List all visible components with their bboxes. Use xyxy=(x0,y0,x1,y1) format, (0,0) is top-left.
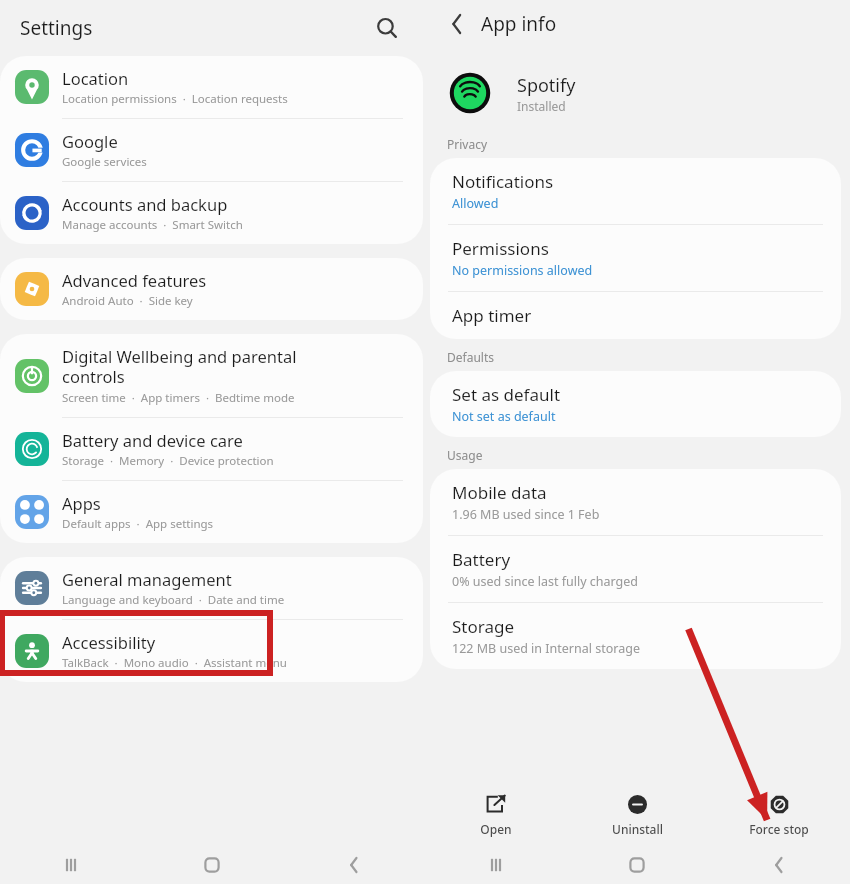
staticText: Battery and device care xyxy=(62,429,243,451)
button[interactable]: General management xyxy=(0,557,423,619)
staticText: Accessibility xyxy=(62,631,156,653)
button[interactable]: Uninstall xyxy=(566,784,708,846)
button[interactable]: Google xyxy=(0,119,423,181)
button[interactable]: Search xyxy=(367,8,407,48)
staticText: Spotify xyxy=(517,73,576,98)
button[interactable]: Back xyxy=(708,846,850,884)
staticText: App timer xyxy=(452,304,532,327)
staticText: Settings xyxy=(20,15,93,41)
staticText: 1.96 MB used since 1 Feb xyxy=(452,506,600,523)
button[interactable]: Open xyxy=(425,784,566,846)
staticText: Open xyxy=(480,821,512,837)
staticText: Advanced features xyxy=(62,269,207,291)
staticText: No permissions allowed xyxy=(452,262,593,279)
staticText: Google services xyxy=(62,154,147,170)
staticText: Defaults xyxy=(447,349,494,365)
staticText: Mobile data xyxy=(452,481,547,504)
staticText: Default apps · App settings xyxy=(62,516,214,532)
staticText: Location permissions · Location requests xyxy=(62,91,288,107)
staticText: Usage xyxy=(447,447,483,463)
staticText: Allowed xyxy=(452,195,499,212)
button[interactable]: Digital Wellbeing and parental controls xyxy=(0,334,423,417)
button[interactable]: Battery xyxy=(430,536,841,602)
staticText: Android Auto · Side key xyxy=(62,293,193,309)
staticText: Installed xyxy=(517,98,566,114)
staticText: TalkBack · Mono audio · Assistant menu xyxy=(62,655,287,671)
button[interactable]: Apps xyxy=(0,481,423,543)
staticText: Screen time · App timers · Bedtime mode xyxy=(62,390,295,406)
button[interactable]: Recents xyxy=(0,846,141,884)
staticText: 0% used since last fully charged xyxy=(452,573,639,590)
staticText: Battery xyxy=(452,548,511,571)
staticText: 122 MB used in Internal storage xyxy=(452,640,640,657)
staticText: Permissions xyxy=(452,237,549,260)
button[interactable]: Storage xyxy=(430,603,841,669)
button[interactable]: Notifications xyxy=(430,158,841,224)
staticText: Accounts and backup xyxy=(62,193,228,215)
staticText: Google xyxy=(62,130,118,152)
staticText: Storage xyxy=(452,615,515,638)
staticText: Digital Wellbeing and parental controls xyxy=(62,345,297,388)
staticText: Manage accounts · Smart Switch xyxy=(62,217,243,233)
button[interactable]: Mobile data xyxy=(430,469,841,535)
button[interactable]: Recents xyxy=(425,846,566,884)
button[interactable]: Location xyxy=(0,56,423,118)
button[interactable]: Home xyxy=(141,846,283,884)
staticText: Apps xyxy=(62,492,101,514)
staticText: Uninstall xyxy=(612,821,663,837)
button[interactable]: Accounts and backup xyxy=(0,182,423,244)
button[interactable]: Permissions xyxy=(430,225,841,291)
staticText: Set as default xyxy=(452,383,561,406)
button[interactable]: Set as default xyxy=(430,371,841,437)
staticText: Language and keyboard · Date and time xyxy=(62,592,285,608)
button[interactable]: App timer xyxy=(430,292,841,339)
staticText: Notifications xyxy=(452,170,554,193)
button[interactable]: Back xyxy=(283,846,425,884)
staticText: Location xyxy=(62,67,129,89)
staticText: Storage · Memory · Device protection xyxy=(62,453,274,469)
staticText: Force stop xyxy=(749,821,809,837)
staticText: Privacy xyxy=(447,136,488,152)
button[interactable]: Force stop xyxy=(708,784,850,846)
staticText: App info xyxy=(481,11,557,37)
button[interactable]: Accessibility xyxy=(0,620,423,682)
button[interactable]: Advanced features xyxy=(0,258,423,320)
button[interactable]: Home xyxy=(566,846,708,884)
staticText: Not set as default xyxy=(452,408,556,425)
staticText: General management xyxy=(62,568,232,590)
button[interactable]: Battery and device care xyxy=(0,418,423,480)
button[interactable]: Back xyxy=(439,6,475,42)
